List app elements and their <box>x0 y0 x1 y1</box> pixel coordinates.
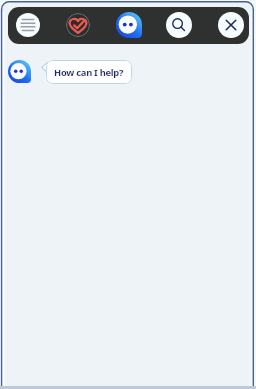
button[interactable]: Search <box>166 12 192 38</box>
staticText: How can I help? <box>54 66 124 79</box>
button[interactable]: Favorites <box>66 13 90 37</box>
button[interactable]: Assistant <box>8 60 31 83</box>
button[interactable]: How can I help? <box>46 60 132 84</box>
button[interactable]: Close <box>218 12 244 38</box>
button[interactable]: Chat <box>116 12 142 38</box>
button[interactable]: Menu <box>16 13 40 37</box>
